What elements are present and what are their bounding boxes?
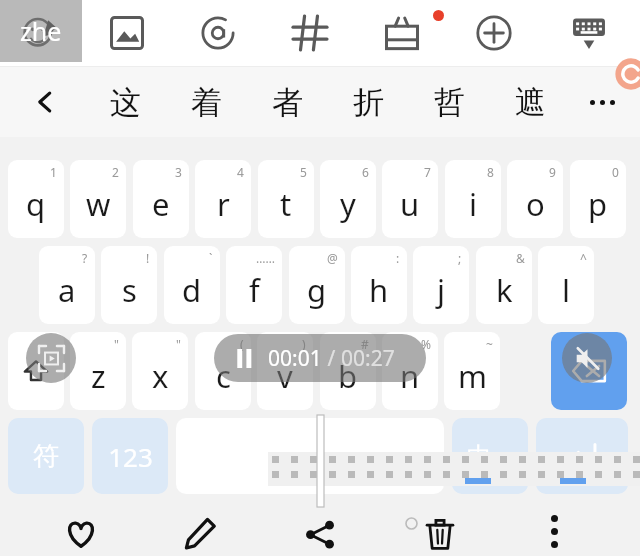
- staticText: (: [240, 336, 244, 352]
- button[interactable]: 6: [320, 160, 376, 238]
- button[interactable]: ?: [39, 246, 95, 324]
- button[interactable]: Delete: [414, 512, 466, 556]
- staticText: ^: [580, 250, 587, 266]
- button[interactable]: ;: [413, 246, 469, 324]
- button[interactable]: Space: [176, 418, 444, 494]
- staticText: ): [302, 336, 306, 352]
- button[interactable]: 者: [248, 67, 326, 137]
- button[interactable]: 3: [133, 160, 189, 238]
- button[interactable]: Like: [55, 512, 107, 556]
- staticText: 00:27: [341, 344, 395, 373]
- button[interactable]: More: [448, 0, 540, 66]
- staticText: 8: [487, 164, 494, 180]
- button[interactable]: !: [101, 246, 157, 324]
- button[interactable]: Share: [294, 512, 346, 556]
- staticText: 1: [50, 164, 57, 180]
- staticText: ?: [82, 250, 88, 266]
- staticText: 123: [108, 439, 153, 474]
- button[interactable]: 这: [86, 67, 164, 137]
- staticText: c: [216, 355, 231, 397]
- staticText: ": [176, 336, 181, 352]
- staticText: ~: [486, 336, 493, 352]
- button[interactable]: @: [289, 246, 345, 324]
- staticText: q: [26, 183, 46, 225]
- staticText: 2: [112, 164, 119, 180]
- button[interactable]: Enter: [536, 418, 628, 494]
- staticText: 遮: [515, 83, 546, 122]
- staticText: ": [114, 336, 119, 352]
- staticText: f: [249, 269, 260, 311]
- staticText: 着: [191, 83, 222, 122]
- button[interactable]: 4: [195, 160, 251, 238]
- button[interactable]: Gift: [356, 0, 448, 66]
- button[interactable]: ": [132, 332, 188, 410]
- staticText: /: [322, 344, 341, 373]
- button[interactable]: 0: [570, 160, 626, 238]
- button[interactable]: &: [476, 246, 532, 324]
- staticText: i: [469, 183, 477, 225]
- staticText: a: [58, 269, 76, 311]
- button[interactable]: Edit: [174, 510, 226, 556]
- button[interactable]: Numbers: [92, 418, 168, 494]
- button[interactable]: %: [382, 332, 438, 410]
- staticText: 这: [110, 83, 141, 122]
- staticText: w: [86, 183, 111, 225]
- button[interactable]: #: [320, 332, 376, 410]
- button[interactable]: Shift: [8, 332, 64, 410]
- button[interactable]: 着: [167, 67, 245, 137]
- staticText: 5: [300, 164, 307, 180]
- staticText: h: [369, 269, 389, 311]
- staticText: y: [340, 183, 356, 225]
- button[interactable]: ": [70, 332, 126, 410]
- staticText: b: [338, 355, 358, 397]
- staticText: !: [146, 250, 150, 266]
- button[interactable]: Back: [14, 67, 76, 137]
- button[interactable]: 7: [382, 160, 438, 238]
- staticText: zhe: [20, 14, 62, 48]
- button[interactable]: Record: [26, 333, 76, 383]
- button[interactable]: 9: [507, 160, 563, 238]
- button[interactable]: 2: [70, 160, 126, 238]
- button[interactable]: Mention: [172, 0, 264, 66]
- staticText: t: [280, 183, 292, 225]
- button[interactable]: Topic: [264, 0, 356, 66]
- button[interactable]: 8: [445, 160, 501, 238]
- staticText: g: [307, 269, 327, 311]
- staticText: %: [421, 336, 431, 352]
- button[interactable]: Mute: [562, 333, 612, 383]
- button[interactable]: ^: [538, 246, 594, 324]
- button[interactable]: Symbols: [8, 418, 84, 494]
- button[interactable]: Hide keyboard: [540, 0, 638, 66]
- button[interactable]: ): [257, 332, 313, 410]
- staticText: 3: [175, 164, 182, 180]
- button[interactable]: More candidates: [575, 67, 630, 137]
- staticText: z: [91, 355, 106, 397]
- staticText: @: [327, 250, 338, 266]
- button[interactable]: 遮: [491, 67, 569, 137]
- staticText: o: [526, 183, 545, 225]
- staticText: 符: [33, 440, 59, 473]
- button[interactable]: (: [195, 332, 251, 410]
- button[interactable]: ……: [226, 246, 282, 324]
- button[interactable]: `: [164, 246, 220, 324]
- button[interactable]: 折: [329, 67, 407, 137]
- staticText: 者: [272, 83, 303, 122]
- button[interactable]: 5: [258, 160, 314, 238]
- button[interactable]: zhe: [0, 0, 82, 62]
- staticText: x: [152, 355, 169, 397]
- staticText: m: [458, 355, 487, 397]
- button[interactable]: 1: [8, 160, 64, 238]
- button[interactable]: Pause: [214, 334, 426, 382]
- button[interactable]: :: [351, 246, 407, 324]
- staticText: /英: [492, 450, 514, 472]
- staticText: 7: [424, 164, 431, 180]
- staticText: 折: [353, 83, 384, 122]
- button[interactable]: Backspace: [551, 332, 627, 410]
- button[interactable]: Image: [82, 0, 172, 66]
- button[interactable]: ~: [444, 332, 500, 410]
- staticText: &: [516, 250, 525, 266]
- button[interactable]: 中: [452, 418, 528, 494]
- button[interactable]: Emoji: [0, 0, 82, 66]
- button[interactable]: 哲: [410, 67, 488, 137]
- staticText: 哲: [434, 83, 465, 122]
